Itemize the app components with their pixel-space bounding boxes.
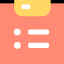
button[interactable]: Checklist app icon xyxy=(0,0,64,64)
